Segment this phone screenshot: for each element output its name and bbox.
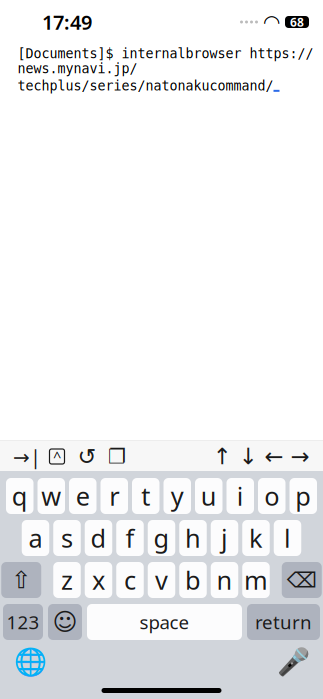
staticText: h: [185, 521, 201, 555]
button[interactable]: n: [211, 562, 238, 598]
staticText: ⌫: [287, 568, 317, 592]
button[interactable]: Left: [261, 441, 287, 471]
button[interactable]: c: [116, 562, 144, 598]
button[interactable]: e: [69, 478, 96, 514]
staticText: ❐: [108, 445, 126, 468]
button[interactable]: w: [37, 478, 65, 514]
button[interactable]: Right: [287, 441, 313, 471]
button[interactable]: Undo: [72, 441, 102, 471]
button[interactable]: s: [53, 520, 81, 556]
button[interactable]: r: [100, 478, 128, 514]
button[interactable]: v: [148, 562, 175, 598]
staticText: r: [109, 479, 119, 513]
button[interactable]: Delete: [282, 562, 322, 598]
staticText: b: [185, 563, 201, 597]
staticText: 🎤: [276, 647, 309, 677]
staticText: 🌐: [13, 647, 46, 677]
staticText: ↓: [238, 444, 257, 469]
button[interactable]: Control: [42, 441, 72, 471]
staticText: o: [264, 479, 279, 513]
staticText: w: [41, 479, 61, 513]
button[interactable]: q: [6, 478, 33, 514]
staticText: c: [124, 563, 136, 597]
staticText: t: [141, 479, 150, 513]
button[interactable]: f: [116, 520, 144, 556]
staticText: q: [12, 479, 28, 513]
staticText: g: [153, 521, 169, 555]
staticText: ☺: [52, 608, 77, 636]
staticText: ⇧: [11, 566, 31, 594]
button[interactable]: t: [132, 478, 159, 514]
button[interactable]: Up: [209, 441, 235, 471]
staticText: space: [139, 610, 189, 634]
button[interactable]: Tab: [12, 441, 42, 471]
staticText: y: [171, 479, 184, 513]
staticText: p: [295, 479, 311, 513]
staticText: return: [255, 610, 312, 634]
button[interactable]: l: [274, 520, 301, 556]
staticText: →|: [13, 443, 41, 470]
staticText: k: [249, 521, 263, 555]
button[interactable]: u: [195, 478, 222, 514]
staticText: f: [125, 521, 134, 555]
button[interactable]: y: [163, 478, 191, 514]
staticText: m: [244, 563, 268, 597]
button[interactable]: z: [53, 562, 81, 598]
staticText: 17:49: [42, 9, 92, 35]
staticText: ◠: [264, 11, 279, 33]
staticText: 123: [6, 610, 39, 634]
staticText: techplus/series/natonakucommand/: [17, 78, 273, 93]
staticText: ^: [53, 447, 61, 466]
staticText: l: [284, 521, 291, 555]
button[interactable]: p: [289, 478, 317, 514]
staticText: e: [76, 479, 90, 513]
button[interactable]: i: [226, 478, 254, 514]
staticText: →: [290, 444, 309, 469]
staticText: s: [61, 521, 73, 555]
button[interactable]: h: [179, 520, 207, 556]
button[interactable]: b: [179, 562, 207, 598]
button[interactable]: o: [258, 478, 285, 514]
button[interactable]: m: [242, 562, 270, 598]
staticText: ↺: [77, 444, 96, 469]
staticText: n: [216, 563, 232, 597]
button[interactable]: g: [148, 520, 175, 556]
button[interactable]: k: [242, 520, 270, 556]
staticText: v: [155, 563, 168, 597]
staticText: i: [237, 479, 244, 513]
button[interactable]: Next keyboard: [12, 644, 48, 680]
button[interactable]: Dictation: [275, 644, 311, 680]
button[interactable]: Emoji: [48, 604, 82, 640]
button[interactable]: j: [211, 520, 238, 556]
staticText: ←: [264, 444, 283, 469]
staticText: a: [28, 521, 42, 555]
staticText: ↑: [212, 444, 231, 469]
staticText: [Documents]$ internalbrowser https://new…: [17, 46, 313, 76]
button[interactable]: Paste: [102, 441, 132, 471]
button[interactable]: x: [85, 562, 112, 598]
button[interactable]: 123: [3, 604, 43, 640]
staticText: z: [61, 563, 73, 597]
button[interactable]: return: [247, 604, 320, 640]
staticText: j: [221, 521, 228, 555]
button[interactable]: a: [22, 520, 49, 556]
button[interactable]: space: [87, 604, 242, 640]
staticText: 68: [290, 14, 304, 30]
button[interactable]: d: [85, 520, 112, 556]
staticText: u: [201, 479, 217, 513]
button[interactable]: Shift: [1, 562, 41, 598]
staticText: x: [92, 563, 105, 597]
staticText: d: [90, 521, 106, 555]
button[interactable]: Down: [235, 441, 261, 471]
